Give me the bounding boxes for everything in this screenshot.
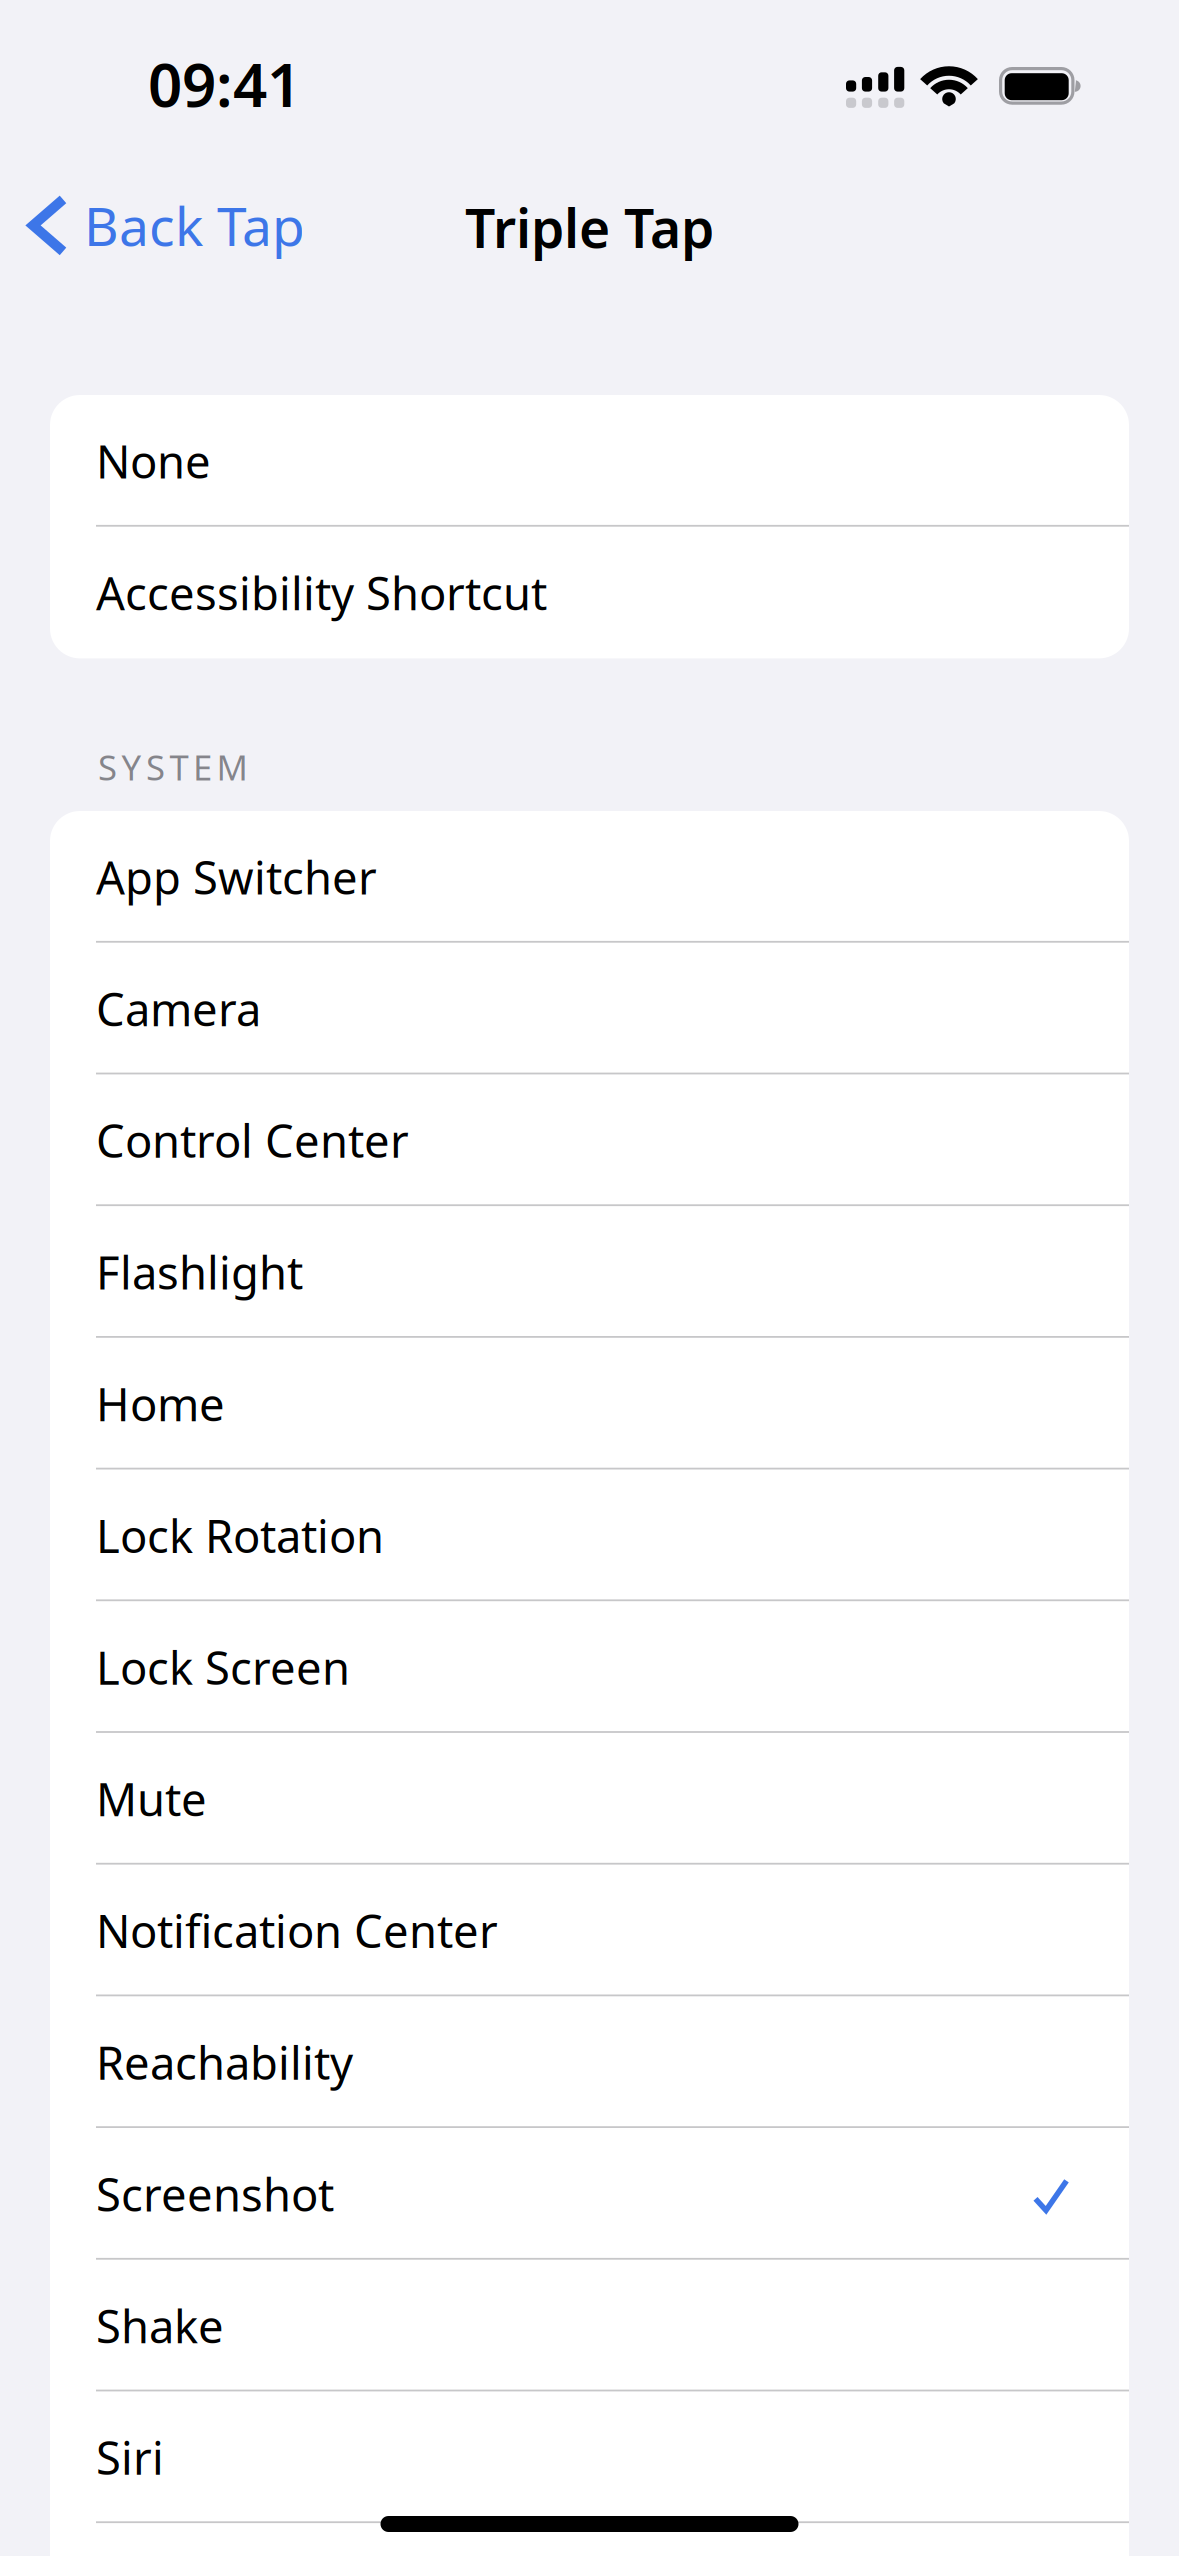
button[interactable]: None [50, 395, 1129, 527]
staticText: Home [96, 1373, 225, 1434]
button[interactable]: Flashlight [50, 1206, 1129, 1338]
button[interactable]: Reachability [50, 1996, 1129, 2128]
staticText: None [96, 431, 211, 491]
staticText: SYSTEM [98, 744, 247, 790]
button[interactable]: Screenshot [50, 2128, 1129, 2260]
staticText: Reachability [96, 2032, 353, 2092]
button[interactable]: Notification Center [50, 1865, 1129, 1996]
button[interactable]: Accessibility Shortcut [50, 527, 1129, 658]
staticText: Screenshot [96, 2164, 334, 2224]
button[interactable]: Lock Screen [50, 1601, 1129, 1733]
button[interactable]: App Switcher [50, 811, 1129, 943]
button[interactable]: Home [50, 1338, 1129, 1469]
staticText: App Switcher [96, 847, 377, 907]
staticText: Camera [96, 978, 261, 1039]
staticText: Notification Center [96, 1900, 498, 1960]
button[interactable]: Control Center [50, 1074, 1129, 1206]
staticText: Lock Rotation [96, 1505, 384, 1565]
staticText: Accessibility Shortcut [96, 562, 547, 623]
button[interactable]: Shake [50, 2260, 1129, 2391]
staticText: Triple Tap [465, 192, 714, 263]
staticText: Control Center [96, 1110, 409, 1170]
button[interactable]: Back Tap [0, 190, 305, 261]
button[interactable]: Siri [50, 2391, 1129, 2523]
staticText: Back Tap [84, 190, 305, 261]
staticText: Lock Screen [96, 1637, 350, 1697]
staticText: Mute [96, 1769, 207, 1829]
button[interactable]: Spotlight [50, 2523, 1129, 2556]
button[interactable]: Mute [50, 1733, 1129, 1865]
staticText: Shake [96, 2295, 224, 2356]
button[interactable]: Lock Rotation [50, 1469, 1129, 1601]
staticText: Flashlight [96, 1242, 303, 1302]
staticText: 09:41 [148, 44, 301, 124]
staticText: Siri [96, 2427, 164, 2487]
button[interactable]: Camera [50, 943, 1129, 1074]
